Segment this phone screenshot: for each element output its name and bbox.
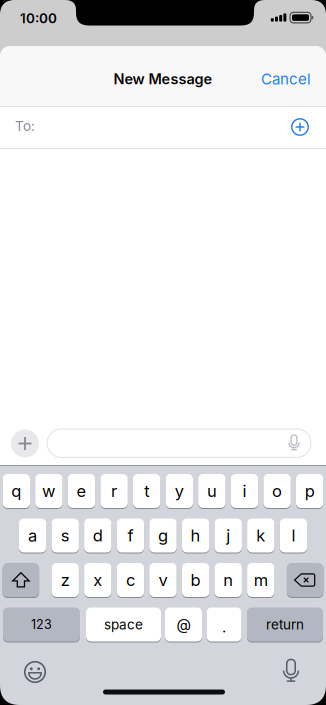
button[interactable] — [47, 429, 311, 457]
staticText: New Message — [113, 70, 212, 88]
staticText: n — [223, 570, 233, 590]
button[interactable]: a — [19, 517, 46, 553]
button[interactable]: @ — [165, 606, 202, 642]
staticText: v — [158, 570, 167, 590]
staticText: l — [291, 525, 295, 545]
button[interactable] — [22, 659, 48, 685]
staticText: m — [254, 570, 268, 590]
button[interactable]: e — [68, 473, 95, 509]
staticText: b — [191, 570, 201, 590]
button[interactable] — [287, 562, 323, 598]
button[interactable]: l — [280, 517, 307, 553]
staticText: return — [266, 616, 304, 633]
button[interactable]: g — [149, 517, 177, 553]
staticText: r — [111, 481, 117, 501]
staticText: g — [158, 525, 168, 545]
staticText: q — [11, 481, 21, 501]
button[interactable]: o — [263, 473, 291, 509]
button[interactable]: t — [133, 473, 160, 509]
staticText: f — [127, 525, 133, 545]
button[interactable]: j — [214, 517, 242, 553]
staticText: 123 — [31, 617, 52, 632]
button[interactable]: s — [51, 517, 79, 553]
staticText: w — [42, 481, 56, 501]
staticText: s — [61, 525, 70, 545]
staticText: c — [126, 570, 135, 590]
staticText: o — [272, 481, 282, 501]
button[interactable]: space — [86, 606, 161, 642]
button[interactable] — [280, 658, 302, 685]
button[interactable]: x — [84, 562, 111, 598]
button[interactable]: d — [84, 517, 111, 553]
button[interactable] — [11, 429, 39, 457]
staticText: x — [93, 570, 102, 590]
staticText: a — [28, 525, 37, 545]
staticText: i — [242, 481, 246, 501]
staticText: h — [191, 525, 201, 545]
staticText: Cancel — [261, 70, 311, 88]
button[interactable] — [3, 562, 39, 598]
button[interactable]: c — [117, 562, 144, 598]
staticText: p — [305, 481, 315, 501]
staticText: To: — [15, 118, 35, 134]
button[interactable]: p — [296, 473, 323, 509]
button[interactable]: q — [3, 473, 30, 509]
button[interactable]: n — [214, 562, 242, 598]
button[interactable]: z — [51, 562, 79, 598]
button[interactable]: k — [247, 517, 274, 553]
button[interactable]: f — [117, 517, 144, 553]
staticText: space — [104, 616, 143, 633]
staticText: k — [256, 525, 265, 545]
staticText: u — [207, 481, 217, 501]
staticText: e — [76, 481, 86, 501]
staticText: d — [93, 525, 103, 545]
button[interactable] — [288, 115, 312, 139]
staticText: j — [226, 525, 230, 545]
button[interactable]: 123 — [3, 606, 80, 642]
staticText: @ — [176, 615, 190, 633]
staticText: t — [144, 481, 149, 501]
button[interactable]: r — [100, 473, 128, 509]
staticText: 10:00 — [20, 10, 57, 26]
button[interactable]: b — [182, 562, 209, 598]
button[interactable]: Cancel — [261, 70, 311, 88]
button[interactable]: return — [247, 606, 323, 642]
button[interactable]: h — [182, 517, 209, 553]
staticText: . — [222, 618, 226, 636]
button[interactable]: i — [231, 473, 258, 509]
button[interactable]: v — [149, 562, 177, 598]
button[interactable]: w — [35, 473, 63, 509]
button[interactable]: y — [166, 473, 193, 509]
button[interactable]: . — [206, 606, 241, 642]
button[interactable]: u — [198, 473, 226, 509]
button[interactable]: m — [247, 562, 274, 598]
staticText: z — [61, 570, 70, 590]
staticText: y — [175, 481, 184, 501]
